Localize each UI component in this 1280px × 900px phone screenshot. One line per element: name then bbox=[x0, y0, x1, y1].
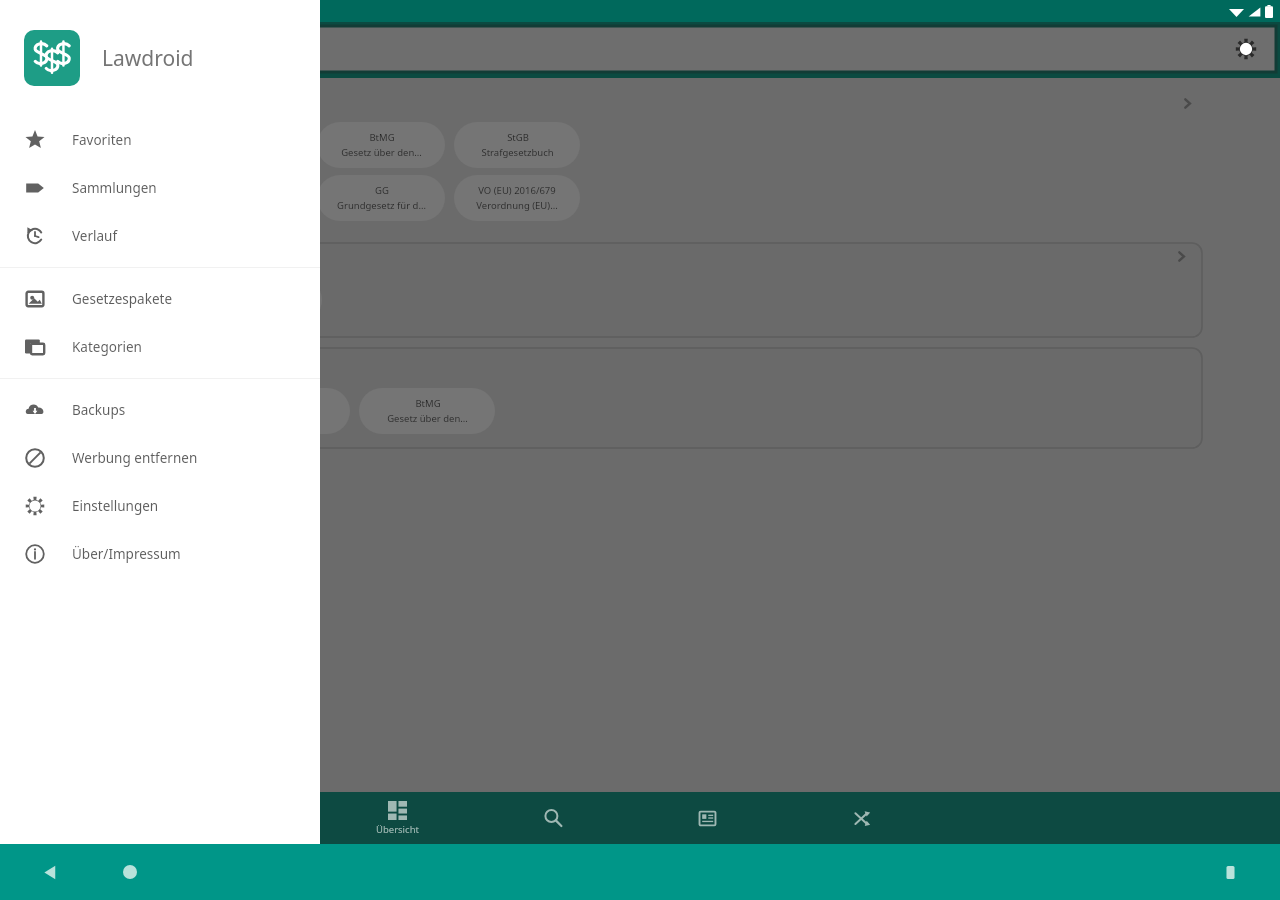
staticText: Gegenstand und… bbox=[91, 412, 173, 425]
button[interactable]: GB bbox=[0, 348, 1202, 448]
staticText: StGB bbox=[507, 131, 529, 144]
button[interactable]: GG bbox=[317, 175, 445, 221]
staticText: Favoriten bbox=[72, 131, 132, 149]
staticText: GB bbox=[37, 288, 50, 300]
staticText: Lawdroid bbox=[102, 44, 194, 73]
button[interactable]: GB bbox=[0, 277, 54, 323]
button[interactable]: Startseite bbox=[110, 852, 150, 892]
staticText: Werbung entfernen bbox=[72, 449, 198, 467]
button[interactable]: Suche bbox=[475, 792, 630, 844]
staticText: VO (EU) 2016/679 bbox=[478, 184, 556, 197]
staticText: Verlauf bbox=[72, 227, 118, 245]
staticText: GG bbox=[375, 184, 389, 197]
button[interactable]: Gesetzespakete bbox=[0, 275, 320, 323]
staticText: Backups bbox=[72, 401, 126, 419]
staticText: che… bbox=[27, 411, 50, 423]
button[interactable]: BtMG bbox=[317, 122, 445, 168]
button[interactable]: ne… bbox=[0, 122, 30, 168]
button[interactable]: Artikel 1 VO (EU… bbox=[63, 388, 201, 434]
button[interactable]: G)… bbox=[0, 175, 30, 221]
staticText: Übersicht bbox=[376, 823, 419, 836]
button[interactable]: Letzte Apps bbox=[1210, 852, 1250, 892]
staticText: AEUV bbox=[94, 131, 118, 144]
button[interactable]: GB bbox=[0, 388, 54, 434]
staticText: Über/Impressum bbox=[72, 545, 181, 563]
staticText: Grundgesetz für d… bbox=[337, 199, 426, 212]
button[interactable]: StGB bbox=[182, 277, 322, 323]
button[interactable]: Verlauf bbox=[0, 212, 320, 260]
button[interactable]: BtMG bbox=[359, 388, 495, 434]
button[interactable]: Artikel bbox=[630, 792, 785, 844]
button[interactable]: StGB bbox=[454, 122, 580, 168]
button[interactable]: Favoriten bbox=[0, 116, 320, 164]
staticText: BtMG bbox=[369, 131, 395, 144]
button[interactable]: Zurück bbox=[30, 852, 70, 892]
staticText: GB bbox=[37, 399, 50, 411]
staticText: Strafgesetzbuch bbox=[481, 146, 554, 159]
staticText: Gesetzespakete bbox=[72, 290, 173, 308]
button[interactable]: Übersicht bbox=[320, 792, 475, 844]
button[interactable]: Einstellungen bbox=[1226, 29, 1266, 69]
button[interactable]: Art 1 GG bbox=[63, 277, 173, 323]
button[interactable]: Sammlungen bbox=[0, 164, 320, 212]
staticText: Art 1 GG bbox=[86, 192, 124, 205]
button[interactable]: Einstellungen bbox=[12, 26, 1276, 72]
button[interactable]: Kategorien bbox=[0, 323, 320, 371]
button[interactable]: Backups bbox=[0, 386, 320, 434]
staticText: Einstellungen bbox=[72, 497, 159, 515]
button[interactable]: VO (EU) 2016/679 bbox=[454, 175, 580, 221]
staticText: BtMG bbox=[415, 397, 441, 410]
button[interactable]: Artikel 13 AEUV bbox=[210, 388, 350, 434]
button[interactable]: AEUV bbox=[39, 122, 171, 168]
button[interactable]: Über/Impressum bbox=[0, 530, 320, 578]
staticText: setp… bbox=[24, 300, 50, 312]
staticText: Gesetz über den… bbox=[387, 412, 468, 425]
button[interactable]: Einstellungen bbox=[0, 482, 320, 530]
staticText: Kategorien bbox=[72, 338, 142, 356]
staticText: Artikel 1 VO (EU… bbox=[93, 397, 171, 410]
staticText: Art 1 GG bbox=[99, 294, 137, 307]
button[interactable]: Mehr anzeigen bbox=[0, 243, 1202, 337]
button[interactable]: Mehr anzeigen bbox=[1168, 243, 1194, 269]
staticText: Verordnung (EU)… bbox=[476, 199, 558, 212]
staticText: Gesetz über den… bbox=[341, 146, 422, 159]
button[interactable]: Zufall bbox=[785, 792, 940, 844]
button[interactable]: Art 1 GG bbox=[39, 175, 171, 221]
button[interactable]: Werbung entfernen bbox=[0, 434, 320, 482]
button[interactable]: Mehr anzeigen bbox=[1174, 90, 1200, 116]
staticText: Sammlungen bbox=[72, 179, 157, 197]
